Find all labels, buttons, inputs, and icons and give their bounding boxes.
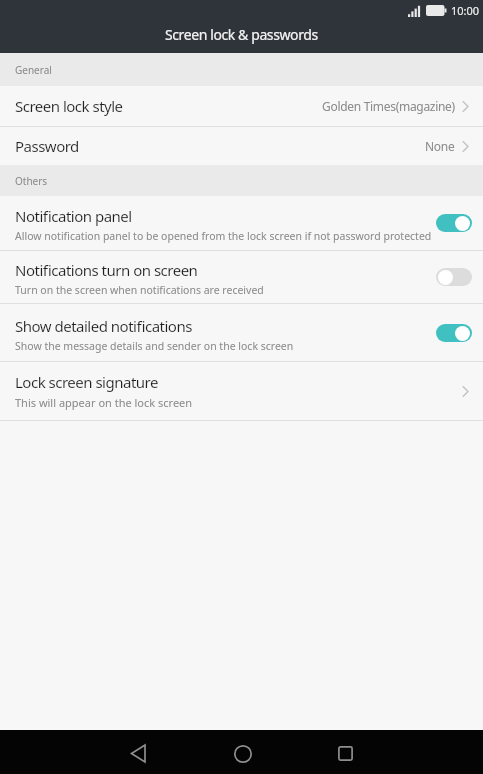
button[interactable]: Show detailed notifications — [0, 304, 483, 361]
staticText: Lock screen signature — [15, 372, 158, 392]
staticText: Screen lock style — [15, 96, 123, 116]
staticText: Screen lock & passwords — [165, 25, 318, 44]
staticText: Notifications turn on screen — [15, 260, 198, 280]
staticText: 10:00 — [451, 3, 480, 18]
staticText: Password — [15, 136, 79, 156]
staticText: None — [425, 138, 455, 154]
staticText: Turn on the screen when notifications ar… — [15, 283, 264, 297]
button[interactable] — [338, 746, 353, 761]
button[interactable]: Notification panel — [0, 196, 483, 250]
button[interactable] — [436, 324, 472, 342]
staticText: Notification panel — [15, 206, 132, 226]
button[interactable]: Password — [0, 127, 483, 165]
staticText: Show the message details and sender on t… — [15, 339, 294, 353]
staticText: This will appear on the lock screen — [15, 395, 193, 410]
staticText: General — [15, 63, 52, 77]
staticText: Show detailed notifications — [15, 316, 192, 336]
staticText: Golden Times(magazine) — [322, 98, 455, 114]
button[interactable]: Lock screen signature — [0, 362, 483, 420]
button[interactable] — [436, 268, 472, 286]
button[interactable] — [436, 214, 472, 232]
button[interactable]: Notifications turn on screen — [0, 251, 483, 303]
button[interactable]: Screen lock style — [0, 86, 483, 126]
staticText: Others — [15, 174, 48, 188]
staticText: Allow notification panel to be opened fr… — [15, 229, 432, 243]
button[interactable] — [234, 745, 252, 763]
button[interactable] — [130, 744, 147, 763]
